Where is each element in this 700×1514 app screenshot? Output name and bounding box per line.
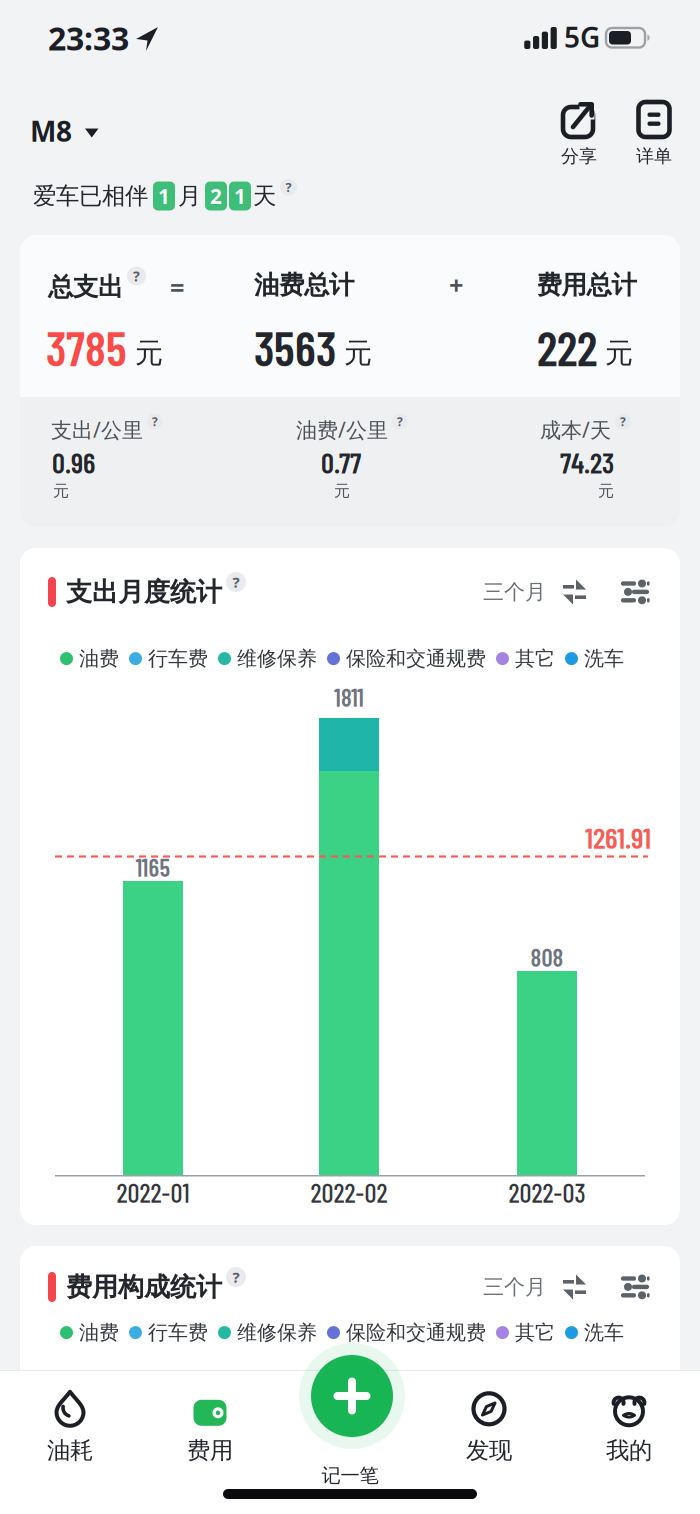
staticText: 油耗 <box>47 1436 93 1465</box>
button[interactable]: 筛选 <box>621 1274 649 1299</box>
staticText: 0.96 <box>52 445 95 479</box>
button[interactable]: 帮助 <box>615 413 631 429</box>
button[interactable]: 我的 <box>574 1380 684 1464</box>
staticText: 808 <box>530 942 563 972</box>
button[interactable]: 发现 <box>434 1380 544 1464</box>
staticText: 1261.91 <box>585 819 651 855</box>
button[interactable]: 筛选 <box>621 579 649 604</box>
staticText: 发现 <box>466 1436 512 1465</box>
staticText: 其它 <box>515 1320 555 1345</box>
staticText: ? <box>397 413 403 430</box>
staticText: 油费总计 <box>254 269 354 301</box>
staticText: 0.77 <box>321 445 361 479</box>
staticText: 保险和交通规费 <box>346 646 486 671</box>
staticText: 保险和交通规费 <box>346 1320 486 1345</box>
staticText: 元 <box>135 335 163 371</box>
staticText: 支出月度统计 <box>66 576 222 608</box>
button[interactable]: 帮助 <box>280 178 297 195</box>
staticText: + <box>449 268 463 302</box>
staticText: 元 <box>605 335 633 371</box>
button[interactable]: 分享 <box>561 102 597 168</box>
staticText: 74.23 <box>560 445 614 479</box>
button[interactable]: 帮助 <box>392 413 408 429</box>
button[interactable]: 记一笔 <box>299 1343 405 1449</box>
staticText: 2022-02 <box>310 1176 387 1208</box>
staticText: 2022-01 <box>116 1176 189 1208</box>
button[interactable]: 帮助 <box>127 266 146 285</box>
staticText: ? <box>152 413 158 430</box>
staticText: 5G <box>564 18 600 56</box>
button[interactable]: 帮助 <box>226 572 246 592</box>
staticText: 我的 <box>606 1436 652 1465</box>
staticText: 三个月 <box>483 1274 546 1300</box>
staticText: 总支出 <box>48 271 123 303</box>
staticText: 222 <box>537 318 597 376</box>
staticText: 2022-03 <box>508 1176 585 1208</box>
staticText: 爱车已相伴 <box>33 181 148 211</box>
staticText: 行车费 <box>148 1320 208 1345</box>
staticText: 洗车 <box>584 1320 624 1345</box>
staticText: 元 <box>53 481 69 501</box>
staticText: 油费 <box>79 646 119 671</box>
staticText: 油费/公里 <box>296 415 388 444</box>
staticText: 天 <box>253 181 276 211</box>
staticText: 维修保养 <box>237 646 317 671</box>
staticText: 元 <box>598 481 614 501</box>
button[interactable]: 详单 <box>636 102 672 168</box>
staticText: 1811 <box>334 682 364 712</box>
staticText: M8 <box>30 112 72 150</box>
staticText: ? <box>285 178 291 196</box>
staticText: 成本/天 <box>540 415 611 444</box>
staticText: 详单 <box>636 145 672 168</box>
staticText: 费用构成统计 <box>66 1271 222 1303</box>
staticText: 月 <box>178 181 201 211</box>
staticText: 费用 <box>187 1436 233 1465</box>
button[interactable]: 帮助 <box>226 1267 246 1287</box>
staticText: ? <box>133 266 140 286</box>
staticText: 1 <box>234 182 246 210</box>
staticText: 费用总计 <box>536 269 636 301</box>
staticText: ? <box>232 572 239 592</box>
staticText: 元 <box>334 481 350 501</box>
button[interactable]: 三个月 <box>483 1274 586 1300</box>
staticText: 元 <box>344 335 372 371</box>
staticText: 1 <box>158 182 170 210</box>
staticText: = <box>170 270 184 304</box>
staticText: 维修保养 <box>237 1320 317 1345</box>
button[interactable]: 油耗 <box>15 1380 125 1464</box>
staticText: 行车费 <box>148 646 208 671</box>
staticText: 2 <box>210 182 222 210</box>
staticText: 3785 <box>46 318 127 376</box>
button[interactable]: 帮助 <box>147 413 163 429</box>
staticText: 其它 <box>515 646 555 671</box>
staticText: 23:33 <box>48 16 129 60</box>
staticText: 洗车 <box>584 646 624 671</box>
staticText: ? <box>620 413 626 430</box>
staticText: 三个月 <box>483 579 546 605</box>
staticText: 分享 <box>561 145 597 168</box>
staticText: 3563 <box>254 318 336 376</box>
staticText: 记一笔 <box>321 1463 378 1488</box>
staticText: 支出/公里 <box>51 415 143 444</box>
button[interactable]: 三个月 <box>483 579 586 605</box>
staticText: 油费 <box>79 1320 119 1345</box>
button[interactable]: M8 <box>30 112 98 150</box>
staticText: 1165 <box>135 852 170 882</box>
button[interactable]: 费用 <box>155 1380 265 1464</box>
staticText: ? <box>232 1267 239 1287</box>
